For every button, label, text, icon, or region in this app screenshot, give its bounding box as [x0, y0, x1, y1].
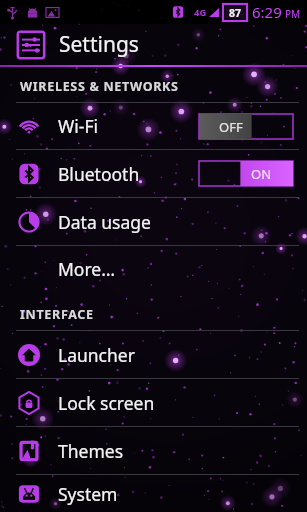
staticText: Wi-Fi: [58, 114, 99, 138]
staticText: Launcher: [58, 343, 135, 367]
button[interactable]: Wi-Fi: [0, 103, 307, 149]
button[interactable]: Toggle on: [199, 161, 293, 186]
button[interactable]: System: [0, 475, 307, 512]
staticText: System: [58, 482, 118, 506]
button[interactable]: Bluetooth: [0, 150, 307, 197]
staticText: More…: [58, 257, 116, 281]
staticText: ON: [251, 165, 272, 183]
staticText: Lock screen: [58, 391, 155, 415]
button[interactable]: Settings: [0, 24, 307, 65]
button[interactable]: Lock screen: [0, 379, 307, 426]
staticText: Themes: [58, 439, 124, 463]
button[interactable]: Toggle off: [199, 114, 293, 139]
staticText: 87: [229, 6, 242, 20]
staticText: INTERFACE: [20, 306, 94, 323]
staticText: 4G: [194, 6, 207, 19]
staticText: OFF: [219, 118, 243, 136]
staticText: PM: [285, 7, 301, 21]
staticText: Data usage: [58, 210, 151, 234]
button[interactable]: Data usage: [0, 198, 307, 245]
staticText: WIRELESS & NETWORKS: [20, 78, 179, 95]
button[interactable]: More…: [0, 246, 307, 292]
staticText: Settings: [59, 30, 139, 59]
staticText: 6:29: [252, 2, 282, 22]
staticText: Bluetooth: [58, 162, 140, 186]
button[interactable]: Launcher: [0, 331, 307, 378]
button[interactable]: Themes: [0, 427, 307, 474]
